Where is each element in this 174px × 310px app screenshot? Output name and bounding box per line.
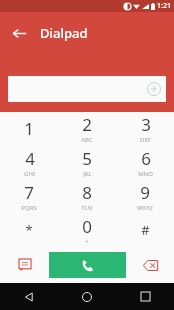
button[interactable]: 9 bbox=[116, 179, 174, 213]
staticText: + bbox=[85, 238, 89, 246]
staticText: 3 bbox=[141, 113, 151, 136]
staticText: MNO bbox=[138, 170, 153, 178]
button[interactable]: 3 bbox=[116, 112, 174, 145]
button[interactable]: 5 bbox=[58, 145, 116, 179]
staticText: TUV bbox=[81, 204, 93, 212]
button[interactable]: Add contact bbox=[8, 76, 166, 102]
button[interactable]: Add contact bbox=[147, 82, 161, 96]
button[interactable]: Call bbox=[49, 252, 126, 278]
staticText: 2 bbox=[82, 113, 92, 136]
staticText: JKL bbox=[83, 170, 92, 178]
button[interactable]: Back bbox=[0, 283, 58, 310]
staticText: DEF bbox=[140, 136, 151, 144]
button[interactable]: 6 bbox=[116, 145, 174, 179]
staticText: 9 bbox=[140, 181, 150, 204]
staticText: Dialpad bbox=[40, 24, 88, 42]
staticText: 1 bbox=[24, 117, 34, 140]
staticText: 7 bbox=[24, 181, 34, 204]
button[interactable]: * bbox=[0, 213, 58, 247]
staticText: 5 bbox=[82, 147, 92, 170]
staticText: * bbox=[25, 221, 33, 239]
button[interactable]: 4 bbox=[0, 145, 58, 179]
button[interactable]: 8 bbox=[58, 179, 116, 213]
button[interactable]: Backspace bbox=[126, 247, 174, 283]
staticText: 8 bbox=[82, 181, 92, 204]
staticText: 0 bbox=[82, 215, 92, 238]
button[interactable]: # bbox=[116, 213, 174, 247]
staticText: 6 bbox=[141, 147, 151, 170]
staticText: WXYZ bbox=[137, 204, 153, 212]
staticText: ABC bbox=[81, 136, 93, 144]
staticText: 1:21 bbox=[157, 1, 171, 11]
button[interactable]: Back bbox=[6, 20, 32, 46]
staticText: GHI bbox=[24, 170, 35, 178]
staticText: 4 bbox=[25, 147, 35, 170]
button[interactable]: Home bbox=[58, 283, 116, 310]
staticText: # bbox=[141, 221, 150, 239]
button[interactable]: 1 bbox=[0, 112, 58, 145]
button[interactable]: 2 bbox=[58, 112, 116, 145]
button[interactable]: Send message bbox=[0, 247, 49, 283]
staticText: PQRS bbox=[21, 204, 37, 212]
button[interactable]: 7 bbox=[0, 179, 58, 213]
button[interactable]: Recents bbox=[116, 283, 174, 310]
button[interactable]: 0 bbox=[58, 213, 116, 247]
